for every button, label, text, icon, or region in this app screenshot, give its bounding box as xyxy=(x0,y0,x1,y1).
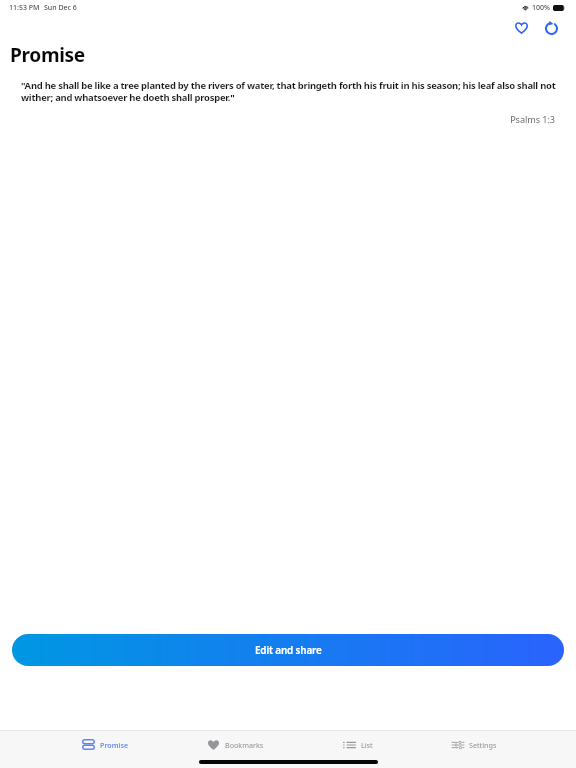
staticText: Psalms 1:3 xyxy=(21,113,555,126)
staticText: Sun Dec 6 xyxy=(44,3,77,13)
staticText: Bookmarks xyxy=(225,740,264,750)
button[interactable]: Bookmarks xyxy=(208,740,264,750)
staticText: Settings xyxy=(469,740,497,750)
staticText: wither; and whatsoever he doeth shall pr… xyxy=(21,91,235,104)
button[interactable]: List xyxy=(343,740,373,750)
button[interactable]: Edit and share xyxy=(12,634,564,666)
button[interactable]: Promise xyxy=(82,739,129,750)
staticText: Promise xyxy=(10,42,85,68)
staticText: Promise xyxy=(100,740,129,750)
button[interactable]: Refresh xyxy=(538,15,565,42)
staticText: Edit and share xyxy=(255,643,322,656)
staticText: List xyxy=(361,740,373,750)
button[interactable]: Settings xyxy=(452,740,497,750)
staticText: "And he shall be like a tree planted by … xyxy=(21,79,556,92)
button[interactable]: Favorite xyxy=(508,14,535,41)
staticText: 11:53 PM xyxy=(9,3,40,13)
staticText: 100% xyxy=(532,3,550,13)
